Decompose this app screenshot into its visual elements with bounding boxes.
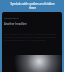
staticText: Symbols with spoilers and hidden there [10, 2, 55, 10]
staticText: Another headline [4, 22, 27, 26]
staticText: Feature story [4, 16, 19, 19]
button[interactable]: Symbols with spoilers and hidden there [0, 0, 64, 12]
staticText: Lorem ipsum dolor sit amet, consectetur … [4, 33, 60, 42]
